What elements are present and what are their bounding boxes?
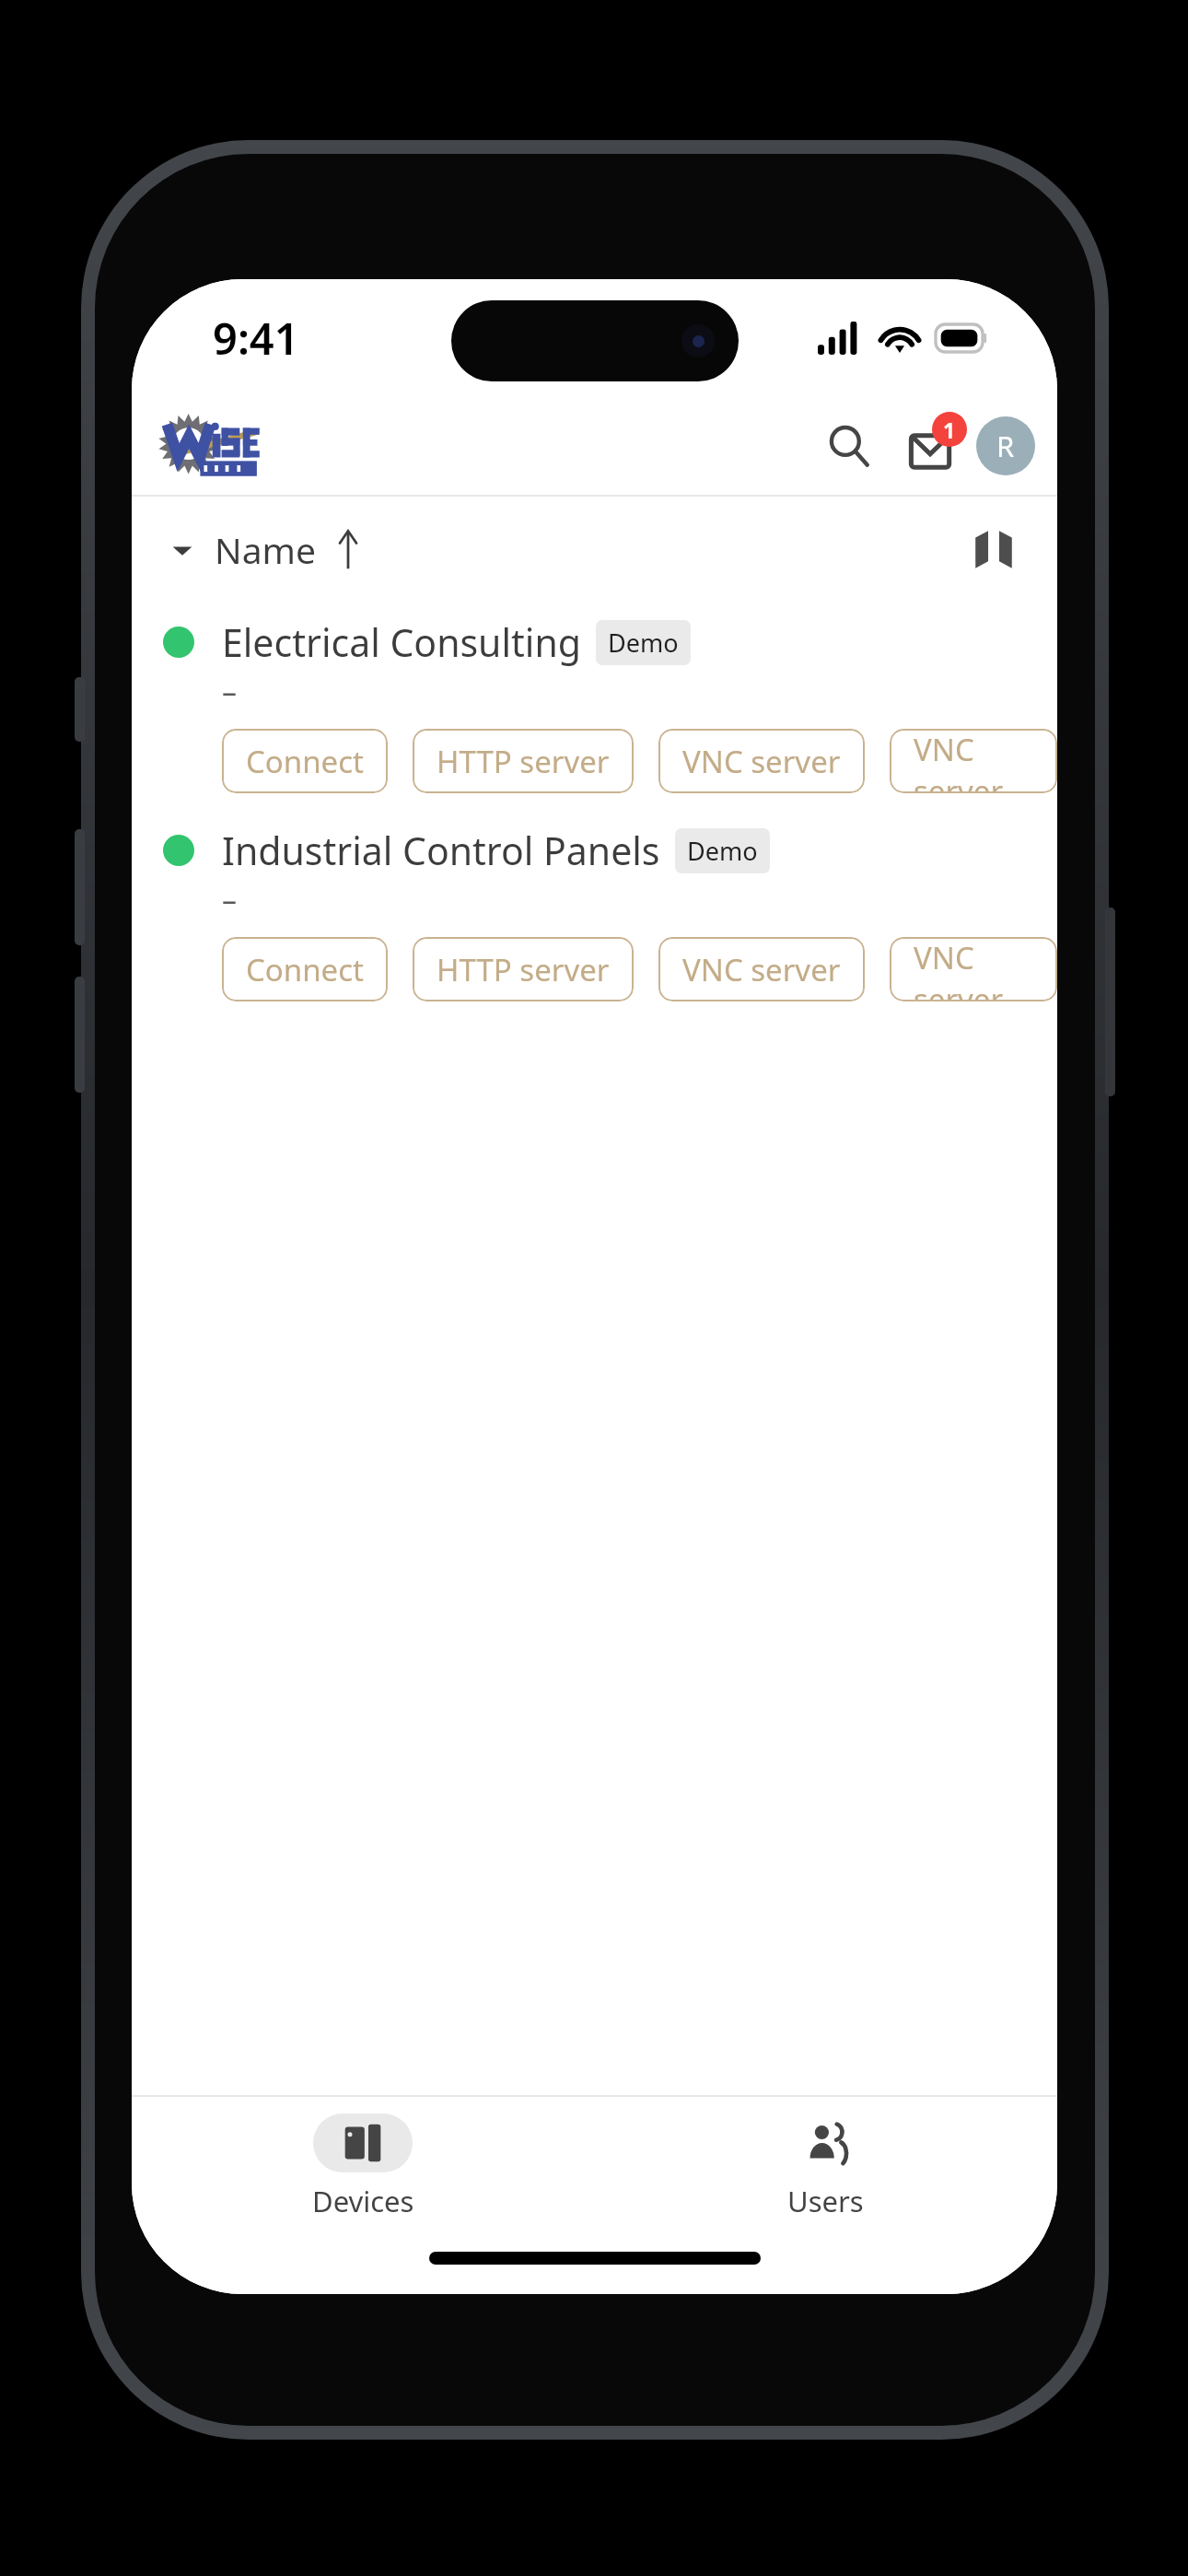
staticText: VNC server <box>914 937 1033 1001</box>
button[interactable]: VNC server <box>890 937 1057 1001</box>
staticText: VNC server <box>914 729 1033 793</box>
button[interactable]: VNC server <box>890 729 1057 793</box>
staticText: Connect <box>246 949 364 990</box>
staticText: HTTP server <box>437 949 610 990</box>
button[interactable]: Messages, 1 unread <box>891 406 971 486</box>
button[interactable]: Devices <box>132 2097 594 2237</box>
staticText: Demo <box>608 626 679 660</box>
staticText: VNC server <box>682 949 841 990</box>
button[interactable]: Map view <box>960 515 1028 583</box>
button[interactable]: Connect <box>222 937 388 1001</box>
button[interactable]: Users <box>594 2097 1057 2237</box>
button[interactable]: Electrical Consulting <box>132 602 1057 810</box>
staticText: VNC server <box>682 741 841 782</box>
staticText: Users <box>787 2182 864 2220</box>
staticText: Electrical Consulting <box>222 616 581 668</box>
staticText: – <box>222 880 238 920</box>
staticText: 9:41 <box>213 309 299 368</box>
staticText: Name <box>215 525 316 574</box>
staticText: Demo <box>687 834 758 868</box>
button[interactable]: Connect <box>222 729 388 793</box>
button[interactable]: WiseView home <box>157 410 264 482</box>
button[interactable]: HTTP server <box>413 729 634 793</box>
button[interactable]: Search <box>810 407 888 485</box>
staticText: HTTP server <box>437 741 610 782</box>
staticText: Industrial Control Panels <box>222 825 660 876</box>
button[interactable]: Account <box>976 416 1035 475</box>
button[interactable]: Name <box>159 516 373 583</box>
staticText: – <box>222 672 238 712</box>
button[interactable]: HTTP server <box>413 937 634 1001</box>
staticText: R <box>996 427 1015 465</box>
button[interactable]: Industrial Control Panels <box>132 810 1057 1018</box>
staticText: Connect <box>246 741 364 782</box>
staticText: Devices <box>312 2182 414 2220</box>
button[interactable]: VNC server <box>658 729 865 793</box>
button[interactable]: VNC server <box>658 937 865 1001</box>
staticText: 1 <box>943 416 956 444</box>
